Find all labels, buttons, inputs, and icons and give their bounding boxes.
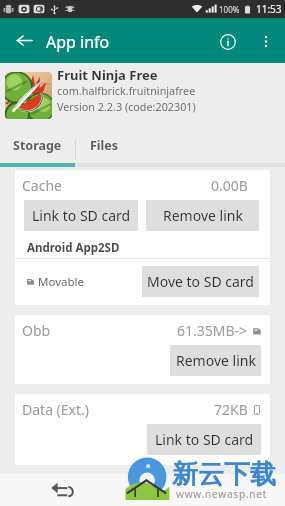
staticText: 72KB xyxy=(214,400,248,419)
button[interactable]: Link to SD card xyxy=(24,200,138,231)
staticText: Link to SD card xyxy=(32,206,131,225)
staticText: 0.00B xyxy=(211,176,248,195)
button[interactable]: Back xyxy=(44,474,80,506)
staticText: Obb xyxy=(22,321,51,340)
staticText: 新云下载 xyxy=(172,458,276,491)
staticText: Link to SD card xyxy=(155,430,254,449)
staticText: 11:53 xyxy=(256,2,282,16)
staticText: Movable xyxy=(38,274,84,290)
staticText: Version 2.2.3 (code:202301) xyxy=(57,99,196,114)
button[interactable]: Link to SD card xyxy=(147,424,261,455)
staticText: com.halfbrick.fruitninjafree xyxy=(57,83,196,98)
staticText: Move to SD card xyxy=(147,272,254,291)
staticText: Fruit Ninja Free xyxy=(57,66,158,84)
button[interactable]: Remove link xyxy=(170,345,261,376)
button[interactable]: More options xyxy=(249,18,283,63)
staticText: App info xyxy=(46,31,110,53)
staticText: www.newasp.net xyxy=(176,487,268,501)
staticText: Android App2SD xyxy=(27,240,120,256)
staticText: 100% xyxy=(219,4,240,15)
button[interactable]: Files xyxy=(76,136,133,163)
staticText: Files xyxy=(90,137,119,154)
staticText: Data (Ext.) xyxy=(22,400,90,419)
staticText: Remove link xyxy=(176,351,256,370)
button[interactable]: Move to SD card xyxy=(142,266,259,297)
staticText: Cache xyxy=(22,176,62,195)
button[interactable]: Remove link xyxy=(146,200,259,231)
button[interactable]: Info xyxy=(208,18,248,63)
staticText: Storage xyxy=(13,137,62,154)
staticText: Remove link xyxy=(163,206,243,225)
staticText: 61.35MB-> xyxy=(177,321,248,340)
button[interactable]: Navigate up xyxy=(4,18,44,63)
button[interactable]: Storage xyxy=(0,136,75,163)
